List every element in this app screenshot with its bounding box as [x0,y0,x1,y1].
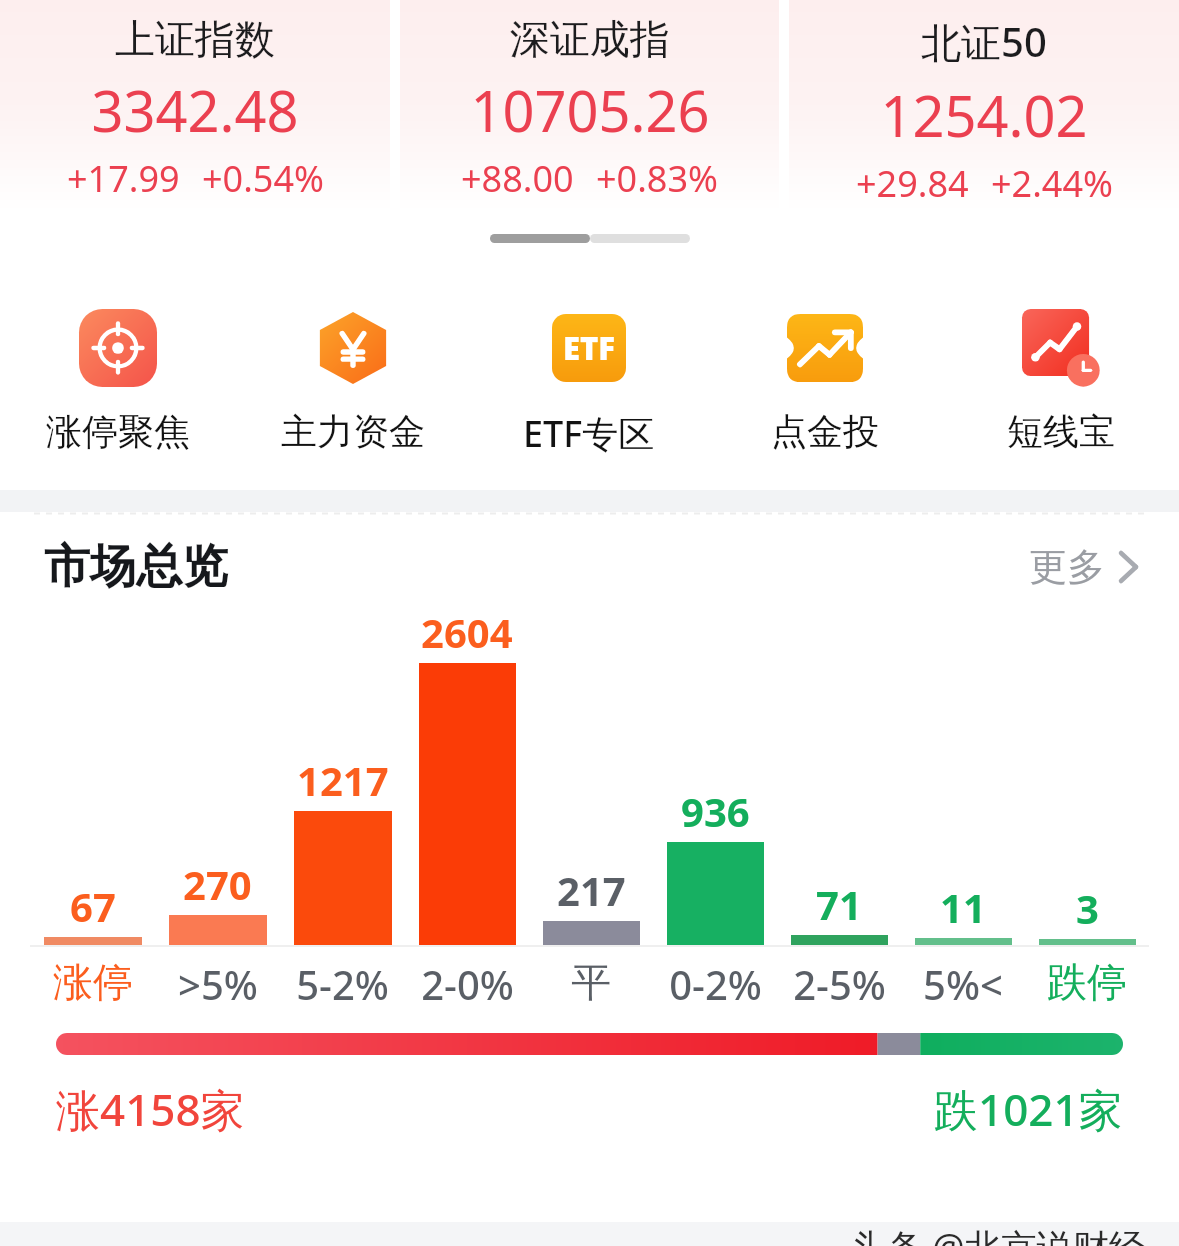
staticText: 0-2% [669,957,762,1011]
staticText: 跌1021家 [934,1079,1123,1139]
staticText: +0.54% [202,154,324,203]
staticText: 头条 @北京说财经 [851,1222,1145,1246]
staticText: >5% [178,957,258,1011]
staticText: 10705.26 [470,72,710,148]
staticText: 11 [940,880,986,934]
staticText: 上证指数 [115,14,275,64]
button[interactable] [56,1033,1123,1055]
staticText: 跌停 [1047,957,1127,1007]
staticText: 217 [557,863,626,917]
staticText: 2-0% [421,957,514,1011]
button[interactable]: 主力资金 [235,305,471,458]
staticText: 1217 [297,753,389,807]
staticText: 主力资金 [281,409,425,454]
button[interactable]: 涨停聚焦 [0,305,235,458]
staticText: 71 [816,877,862,931]
staticText: 2-5% [793,957,886,1011]
button[interactable]: 上证指数 [0,0,390,212]
staticText: 平 [571,957,611,1007]
staticText: 67 [70,879,116,933]
button[interactable]: 深证成指 [400,0,779,212]
staticText: 深证成指 [510,14,670,64]
staticText: 5%< [923,957,1003,1011]
button[interactable]: 点金投 [707,305,943,458]
staticText: +2.44% [991,159,1113,208]
staticText: 270 [183,857,252,911]
staticText: +0.83% [596,154,718,203]
staticText: 点金投 [771,409,879,454]
staticText: 更多 [1029,543,1105,591]
staticText: 936 [681,784,750,838]
staticText: 涨4158家 [56,1079,245,1139]
staticText: 3 [1076,881,1099,935]
staticText: 涨停 [53,957,133,1007]
button[interactable]: 更多 [1023,537,1145,597]
button[interactable]: ETF [471,305,707,462]
staticText: +17.99 [67,154,180,203]
staticText: 短线宝 [1007,409,1115,454]
staticText: +29.84 [856,159,969,208]
staticText: ETF专区 [523,409,655,458]
button[interactable]: 短线宝 [943,305,1179,458]
staticText: 1254.02 [880,77,1088,153]
staticText: 2604 [421,605,513,659]
staticText: +88.00 [461,154,574,203]
staticText: 3342.48 [91,72,299,148]
staticText: 北证50 [921,14,1047,69]
staticText: 5-2% [296,957,389,1011]
button[interactable]: 北证50 [789,0,1179,212]
staticText: 市场总览 [44,538,228,596]
staticText: ETF [563,327,616,369]
staticText: 涨停聚焦 [46,409,190,454]
